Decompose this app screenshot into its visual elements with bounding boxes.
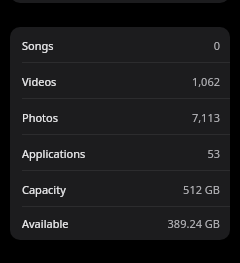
staticText: 389.24 GB bbox=[167, 216, 220, 231]
staticText: Photos bbox=[22, 110, 59, 125]
staticText: Applications bbox=[22, 146, 86, 161]
staticText: 53 bbox=[207, 146, 220, 161]
staticText: 512 GB bbox=[183, 182, 220, 197]
staticText: Songs bbox=[22, 38, 54, 53]
button[interactable]: Available bbox=[10, 207, 230, 240]
button[interactable]: Songs bbox=[10, 27, 230, 63]
button[interactable]: Applications bbox=[10, 135, 230, 171]
button[interactable]: Videos bbox=[10, 63, 230, 99]
staticText: Capacity bbox=[22, 182, 66, 197]
staticText: 0 bbox=[213, 38, 220, 53]
button[interactable]: Capacity bbox=[10, 171, 230, 207]
staticText: Available bbox=[22, 216, 69, 231]
staticText: 7,113 bbox=[191, 110, 220, 125]
staticText: 1,062 bbox=[191, 74, 220, 89]
staticText: Videos bbox=[22, 74, 57, 89]
button[interactable] bbox=[10, 0, 230, 3]
button[interactable]: Photos bbox=[10, 99, 230, 135]
